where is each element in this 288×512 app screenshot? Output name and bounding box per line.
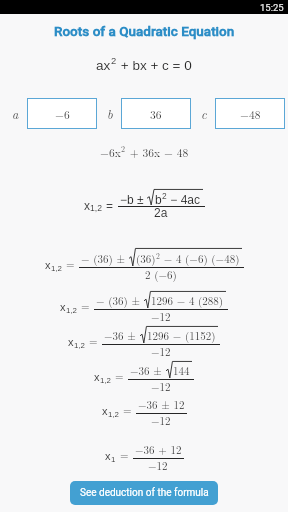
staticText: 1,2 bbox=[51, 264, 62, 273]
staticText: 1 bbox=[111, 455, 116, 464]
staticText: = bbox=[66, 256, 75, 272]
staticText: 1,2 bbox=[74, 341, 85, 350]
staticText: x bbox=[84, 199, 90, 212]
staticText: 1,2 bbox=[100, 376, 111, 385]
staticText: −12 bbox=[148, 458, 168, 474]
staticText: 2a bbox=[154, 206, 168, 219]
staticText: −36 ± bbox=[130, 363, 166, 379]
staticText: = bbox=[115, 368, 124, 384]
staticText: 15:25 bbox=[260, 2, 284, 13]
staticText: = bbox=[89, 333, 98, 349]
staticText: −6x bbox=[100, 144, 121, 160]
staticText: 1296 − (1152) bbox=[147, 328, 216, 344]
staticText: −12 bbox=[151, 309, 171, 325]
staticText: 144 bbox=[173, 363, 190, 379]
staticText: + 36x − 48 bbox=[126, 144, 189, 160]
staticText: −36 ± 12 bbox=[138, 397, 185, 413]
staticText: 1,2 bbox=[90, 203, 102, 213]
staticText: −6 bbox=[55, 106, 70, 122]
staticText: 1,2 bbox=[108, 410, 119, 419]
staticText: − (36) ± bbox=[81, 251, 129, 267]
staticText: −12 bbox=[151, 344, 171, 360]
staticText: = bbox=[81, 298, 90, 314]
staticText: − 4 (−6) (−48) bbox=[160, 251, 240, 267]
staticText: = bbox=[120, 447, 129, 463]
staticText: −48 bbox=[240, 106, 261, 122]
staticText: 1296 − 4 (288) bbox=[151, 293, 224, 309]
staticText: + bx + c = 0 bbox=[117, 58, 192, 73]
button[interactable]: 36 bbox=[121, 98, 191, 129]
staticText: 2 bbox=[111, 55, 117, 66]
staticText: b bbox=[155, 193, 162, 206]
staticText: x bbox=[60, 301, 66, 313]
staticText: −36 ± bbox=[104, 328, 140, 344]
staticText: = bbox=[106, 199, 114, 212]
staticText: − 4ac bbox=[167, 193, 201, 206]
staticText: −36 + 12 bbox=[135, 442, 182, 458]
button[interactable]: −6 bbox=[27, 98, 97, 129]
staticText: a bbox=[12, 105, 19, 123]
staticText: x bbox=[45, 259, 51, 271]
staticText: 36 bbox=[150, 106, 162, 122]
staticText: = bbox=[123, 402, 132, 418]
button[interactable]: −48 bbox=[215, 98, 285, 129]
staticText: 2 bbox=[162, 191, 167, 200]
staticText: x bbox=[94, 371, 100, 383]
staticText: x bbox=[105, 450, 111, 462]
staticText: −12 bbox=[151, 379, 171, 395]
staticText: 2 bbox=[156, 250, 160, 261]
staticText: −12 bbox=[151, 413, 171, 429]
staticText: ax bbox=[96, 58, 111, 73]
staticText: 2 bbox=[121, 143, 126, 154]
button[interactable]: See deduction of the formula bbox=[70, 481, 218, 505]
staticText: c bbox=[201, 105, 207, 123]
staticText: (36) bbox=[136, 251, 156, 267]
staticText: −b ± bbox=[120, 193, 147, 206]
staticText: See deduction of the formula bbox=[80, 487, 209, 499]
staticText: Roots of a Quadratic Equation bbox=[54, 23, 235, 39]
staticText: b bbox=[107, 105, 113, 123]
staticText: x bbox=[102, 405, 108, 417]
staticText: 1,2 bbox=[66, 306, 77, 315]
staticText: x bbox=[68, 336, 74, 348]
staticText: − (36) ± bbox=[96, 293, 144, 309]
staticText: 2 (−6) bbox=[145, 267, 177, 283]
